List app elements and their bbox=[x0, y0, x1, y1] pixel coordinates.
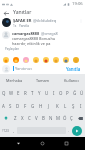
staticText: , bbox=[13, 128, 15, 134]
button[interactable]: O bbox=[57, 86, 64, 99]
button[interactable]: I bbox=[77, 99, 85, 112]
staticText: O bbox=[59, 90, 63, 96]
staticText: Ş bbox=[72, 103, 75, 109]
staticText: camargas8888 bbox=[12, 31, 40, 36]
staticText: BonusHost2. ce bbox=[12, 46, 40, 51]
button[interactable]: Ğ bbox=[71, 86, 78, 99]
button[interactable]: X bbox=[19, 112, 26, 124]
staticText: R bbox=[24, 90, 27, 96]
staticText: N bbox=[49, 115, 53, 121]
button[interactable]: Kullanıcı bbox=[57, 74, 85, 86]
staticText: K bbox=[56, 103, 59, 109]
button[interactable]: ?123 bbox=[0, 126, 11, 135]
staticText: L bbox=[64, 103, 67, 109]
button[interactable]: H bbox=[37, 99, 45, 112]
button[interactable]: G bbox=[29, 99, 37, 112]
button[interactable]: S bbox=[7, 99, 14, 112]
button[interactable]: E bbox=[15, 86, 22, 99]
button[interactable]: Ç bbox=[68, 112, 75, 124]
staticText: A bbox=[2, 103, 5, 109]
button[interactable]: V bbox=[33, 112, 40, 124]
button[interactable]: Tamam bbox=[29, 74, 57, 86]
staticText: X bbox=[21, 115, 24, 121]
button[interactable]: L bbox=[61, 99, 69, 112]
button[interactable]: I bbox=[50, 86, 57, 99]
staticText: G bbox=[31, 103, 35, 109]
staticText: I bbox=[80, 103, 82, 109]
button[interactable]: U bbox=[43, 86, 50, 99]
staticText: Ğ bbox=[73, 90, 77, 96]
staticText: Z bbox=[14, 115, 17, 121]
button[interactable]: A bbox=[0, 99, 7, 112]
button[interactable]: J bbox=[45, 99, 53, 112]
button[interactable]: Backspace bbox=[75, 112, 85, 124]
staticText: Yanıtlar bbox=[13, 9, 32, 16]
staticText: Ü bbox=[80, 90, 84, 96]
button[interactable]: P bbox=[64, 86, 71, 99]
button[interactable]: Z bbox=[11, 112, 19, 124]
button[interactable]: Ş bbox=[69, 99, 77, 112]
button[interactable]: B bbox=[40, 112, 47, 124]
button[interactable]: Recent apps bbox=[61, 138, 72, 149]
staticText: U bbox=[45, 90, 49, 96]
staticText: Kullanıcı bbox=[64, 78, 79, 83]
button[interactable]: Emoji bbox=[53, 57, 59, 63]
button[interactable]: Emoji bbox=[33, 57, 39, 63]
staticText: T bbox=[31, 90, 34, 96]
staticText: J bbox=[48, 103, 50, 109]
button[interactable]: Merhaba bbox=[0, 74, 29, 86]
button[interactable]: Back bbox=[13, 138, 24, 149]
button[interactable]: Q bbox=[0, 86, 8, 99]
staticText: V bbox=[35, 115, 38, 121]
button[interactable]: Emoji bbox=[13, 57, 19, 63]
button[interactable]: Ö bbox=[61, 112, 68, 124]
button[interactable]: C bbox=[26, 112, 33, 124]
staticText: I bbox=[53, 90, 55, 96]
staticText: H bbox=[39, 103, 43, 109]
button[interactable]: Yanıtla bbox=[64, 64, 83, 74]
button[interactable]: K bbox=[53, 99, 61, 112]
button[interactable]: Emoji bbox=[3, 57, 9, 63]
button[interactable]: M bbox=[54, 112, 61, 124]
staticText: camargas8888 Bonushu bbox=[12, 36, 56, 41]
button[interactable]: Send bbox=[72, 126, 82, 136]
button[interactable]: F bbox=[21, 99, 29, 112]
button[interactable]: , bbox=[11, 126, 17, 135]
staticText: B bbox=[42, 115, 45, 121]
staticText: hazırdır, etkinlik ve pa bbox=[12, 41, 51, 46]
staticText: Y bbox=[38, 90, 41, 96]
staticText: Tamam bbox=[36, 78, 50, 83]
button[interactable]: R bbox=[22, 86, 29, 99]
button[interactable]: W bbox=[8, 86, 15, 99]
staticText: F bbox=[24, 103, 27, 109]
staticText: 1s bbox=[13, 24, 17, 28]
button[interactable]: Shift bbox=[0, 112, 11, 124]
button[interactable]: Emoji bbox=[73, 57, 79, 63]
button[interactable]: D bbox=[14, 99, 21, 112]
button[interactable]: Y bbox=[36, 86, 43, 99]
staticText: C bbox=[28, 115, 31, 121]
staticText: Paylaşılan bbox=[5, 47, 20, 51]
button[interactable]: T bbox=[29, 86, 36, 99]
staticText: Yanıtla bbox=[19, 24, 29, 28]
staticText: P bbox=[66, 90, 69, 96]
staticText: W bbox=[9, 90, 14, 96]
staticText: Q bbox=[2, 90, 6, 96]
staticText: ?123 bbox=[2, 129, 9, 133]
staticText: @cmrgs8 bbox=[41, 31, 58, 36]
button[interactable]: Home bbox=[37, 138, 48, 149]
button[interactable]: Emoji bbox=[63, 57, 69, 63]
button[interactable]: Emoji bbox=[23, 57, 29, 63]
button[interactable]: . bbox=[66, 126, 72, 135]
button[interactable]: Back bbox=[2, 9, 10, 17]
staticText: Yanıtla bbox=[66, 66, 81, 72]
staticText: M bbox=[56, 115, 60, 121]
staticText: 19:06 bbox=[72, 1, 83, 7]
button[interactable]: Emoji bbox=[43, 57, 49, 63]
button[interactable]: N bbox=[47, 112, 54, 124]
staticText: S bbox=[9, 103, 12, 109]
staticText: @tlcldukdeq bbox=[33, 18, 57, 23]
button[interactable]: Ü bbox=[78, 86, 85, 99]
